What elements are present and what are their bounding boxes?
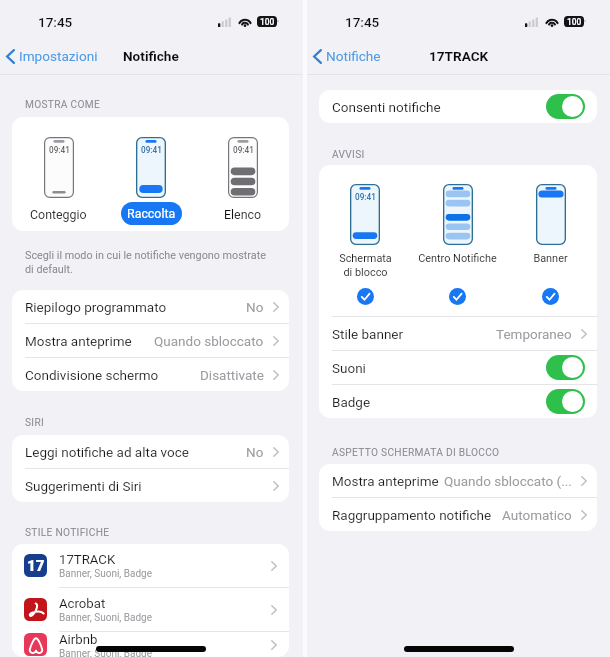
staticText: Quando sbloccato (... bbox=[444, 473, 572, 489]
button[interactable]: Centro Notifiche bbox=[411, 165, 504, 316]
button[interactable]: Stile banner bbox=[319, 317, 597, 350]
staticText: Notifiche bbox=[123, 48, 179, 64]
staticText: AVVISI bbox=[332, 149, 365, 161]
staticText: Suoni bbox=[332, 360, 366, 376]
staticText: 09:41 bbox=[49, 145, 70, 155]
staticText: Banner, Suoni, Badge bbox=[59, 568, 153, 580]
staticText: Notifiche bbox=[326, 48, 381, 64]
staticText: 17TRACK bbox=[59, 552, 116, 567]
staticText: 09:41 bbox=[355, 192, 376, 202]
staticText: MOSTRA COME bbox=[25, 99, 101, 111]
staticText: No bbox=[246, 444, 264, 460]
staticText: Condivisione schermo bbox=[25, 367, 159, 383]
button[interactable]: Condivisione schermo bbox=[12, 358, 289, 391]
staticText: 09:41 bbox=[141, 145, 162, 155]
staticText: Banner, Suoni, Badge bbox=[59, 648, 153, 657]
staticText: ASPETTO SCHERMATA DI BLOCCO bbox=[332, 447, 500, 459]
staticText: Disattivate bbox=[200, 367, 264, 383]
staticText: Mostra anteprime bbox=[25, 333, 132, 349]
button[interactable]: 09:41 bbox=[12, 117, 105, 231]
staticText: Temporaneo bbox=[496, 326, 572, 342]
staticText: Automatico bbox=[502, 507, 572, 523]
staticText: 100 bbox=[260, 17, 275, 27]
button[interactable]: 09:41 bbox=[105, 117, 197, 231]
button[interactable]: Badge bbox=[319, 385, 597, 418]
staticText: Mostra anteprime bbox=[332, 473, 439, 489]
button[interactable]: 09:41 bbox=[319, 165, 411, 316]
staticText: Raccolta bbox=[127, 206, 176, 221]
button[interactable]: Airbnb bbox=[12, 632, 289, 657]
staticText: SIRI bbox=[25, 417, 45, 429]
staticText: Centro Notifiche bbox=[418, 252, 497, 265]
button[interactable]: Mostra anteprime bbox=[12, 324, 289, 357]
staticText: Suggerimenti di Siri bbox=[25, 478, 142, 494]
staticText: Scegli il modo in cui le notifiche vengo… bbox=[25, 249, 266, 276]
staticText: STILE NOTIFICHE bbox=[25, 527, 110, 539]
staticText: 17:45 bbox=[38, 14, 73, 30]
button[interactable]: Riepilogo programmato bbox=[12, 290, 289, 323]
staticText: 100 bbox=[567, 17, 582, 27]
button[interactable]: Mostra anteprime bbox=[319, 464, 597, 497]
staticText: Banner, Suoni, Badge bbox=[59, 612, 153, 624]
button[interactable]: Impostazioni bbox=[3, 42, 101, 70]
staticText: Banner bbox=[533, 252, 568, 265]
button[interactable]: Notifiche bbox=[310, 42, 384, 70]
staticText: Acrobat bbox=[59, 596, 106, 611]
button[interactable]: 09:41 bbox=[197, 117, 289, 231]
staticText: No bbox=[246, 299, 264, 315]
staticText: Consenti notifiche bbox=[332, 99, 441, 115]
button[interactable]: Consenti notifiche bbox=[319, 90, 597, 123]
staticText: Badge bbox=[332, 394, 371, 410]
staticText: Airbnb bbox=[59, 632, 98, 647]
button[interactable]: Raggruppamento notifiche bbox=[319, 498, 597, 531]
button[interactable]: Suoni bbox=[319, 351, 597, 384]
staticText: Riepilogo programmato bbox=[25, 299, 167, 315]
staticText: Conteggio bbox=[30, 207, 87, 222]
staticText: 17:45 bbox=[345, 14, 380, 30]
staticText: Schermata di blocco bbox=[339, 252, 392, 278]
staticText: Elenco bbox=[224, 207, 262, 222]
staticText: 17TRACK bbox=[429, 48, 489, 64]
staticText: Stile banner bbox=[332, 326, 404, 342]
button[interactable]: Banner bbox=[504, 165, 597, 316]
button[interactable]: Leggi notifiche ad alta voce bbox=[12, 435, 289, 468]
button[interactable]: 17 bbox=[12, 544, 289, 587]
staticText: Quando sbloccato bbox=[154, 333, 264, 349]
button[interactable]: Suggerimenti di Siri bbox=[12, 469, 289, 502]
staticText: Raggruppamento notifiche bbox=[332, 507, 492, 523]
staticText: Impostazioni bbox=[19, 48, 98, 64]
staticText: Leggi notifiche ad alta voce bbox=[25, 444, 189, 460]
button[interactable]: Acrobat bbox=[12, 588, 289, 631]
staticText: 09:41 bbox=[233, 145, 254, 155]
staticText: 17 bbox=[27, 557, 45, 575]
